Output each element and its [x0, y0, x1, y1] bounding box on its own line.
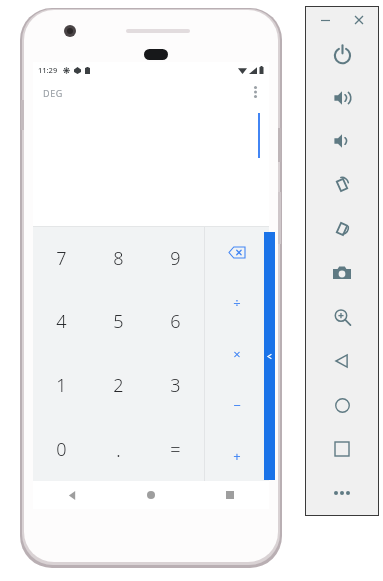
button[interactable]: 2	[90, 353, 147, 417]
button[interactable]: .	[90, 417, 147, 481]
button[interactable]: Close	[349, 10, 369, 30]
button[interactable]: 7	[33, 227, 90, 290]
button[interactable]: Back	[306, 339, 378, 383]
button[interactable]: Volume down	[306, 119, 378, 163]
button[interactable]: 3	[147, 353, 204, 417]
button[interactable]: =	[147, 417, 204, 481]
button[interactable]: Expand panel	[264, 232, 275, 480]
staticText: 0	[56, 437, 67, 462]
staticText: −	[233, 396, 241, 414]
button[interactable]: More options	[244, 81, 266, 103]
button[interactable]: Home	[111, 481, 190, 509]
button[interactable]: Rotate left	[306, 163, 378, 207]
button[interactable]: Take screenshot	[306, 251, 378, 295]
staticText: 5	[113, 309, 124, 334]
staticText: ×	[233, 345, 241, 363]
button[interactable]: 4	[33, 290, 90, 353]
staticText: 1	[56, 373, 67, 398]
staticText: =	[170, 437, 181, 462]
staticText: ÷	[233, 294, 241, 312]
button[interactable]: −	[205, 379, 269, 430]
staticText: 9	[170, 246, 181, 271]
staticText: DEG	[43, 87, 63, 99]
button[interactable]: 8	[90, 227, 147, 290]
button[interactable]: 0	[33, 417, 90, 481]
button[interactable]: Back	[33, 481, 111, 509]
button[interactable]: Home	[306, 383, 378, 427]
button[interactable]: 5	[90, 290, 147, 353]
button[interactable]: Volume up	[306, 76, 378, 119]
button[interactable]: 6	[147, 290, 204, 353]
button[interactable]: Recent apps	[190, 481, 269, 509]
button[interactable]: 1	[33, 353, 90, 417]
button[interactable]: Backspace	[205, 227, 269, 277]
staticText: .	[116, 436, 121, 463]
staticText: 3	[170, 373, 181, 398]
button[interactable]: 9	[147, 227, 204, 290]
button[interactable]: ×	[205, 328, 269, 379]
button[interactable]: +	[205, 430, 269, 481]
staticText: 6	[170, 309, 181, 334]
button[interactable]: Rotate right	[306, 207, 378, 251]
staticText: 7	[56, 246, 67, 271]
staticText: 8	[113, 246, 124, 271]
staticText: 2	[113, 373, 124, 398]
button[interactable]: More	[306, 471, 378, 515]
button[interactable]: ÷	[205, 277, 269, 328]
staticText: 11:29	[38, 65, 58, 75]
button[interactable]: Overview	[306, 427, 378, 471]
button[interactable]: Zoom	[306, 295, 378, 339]
staticText: 4	[56, 309, 67, 334]
button[interactable]: Power	[306, 33, 378, 76]
button[interactable]: Minimize	[315, 10, 335, 30]
staticText: +	[233, 447, 241, 465]
